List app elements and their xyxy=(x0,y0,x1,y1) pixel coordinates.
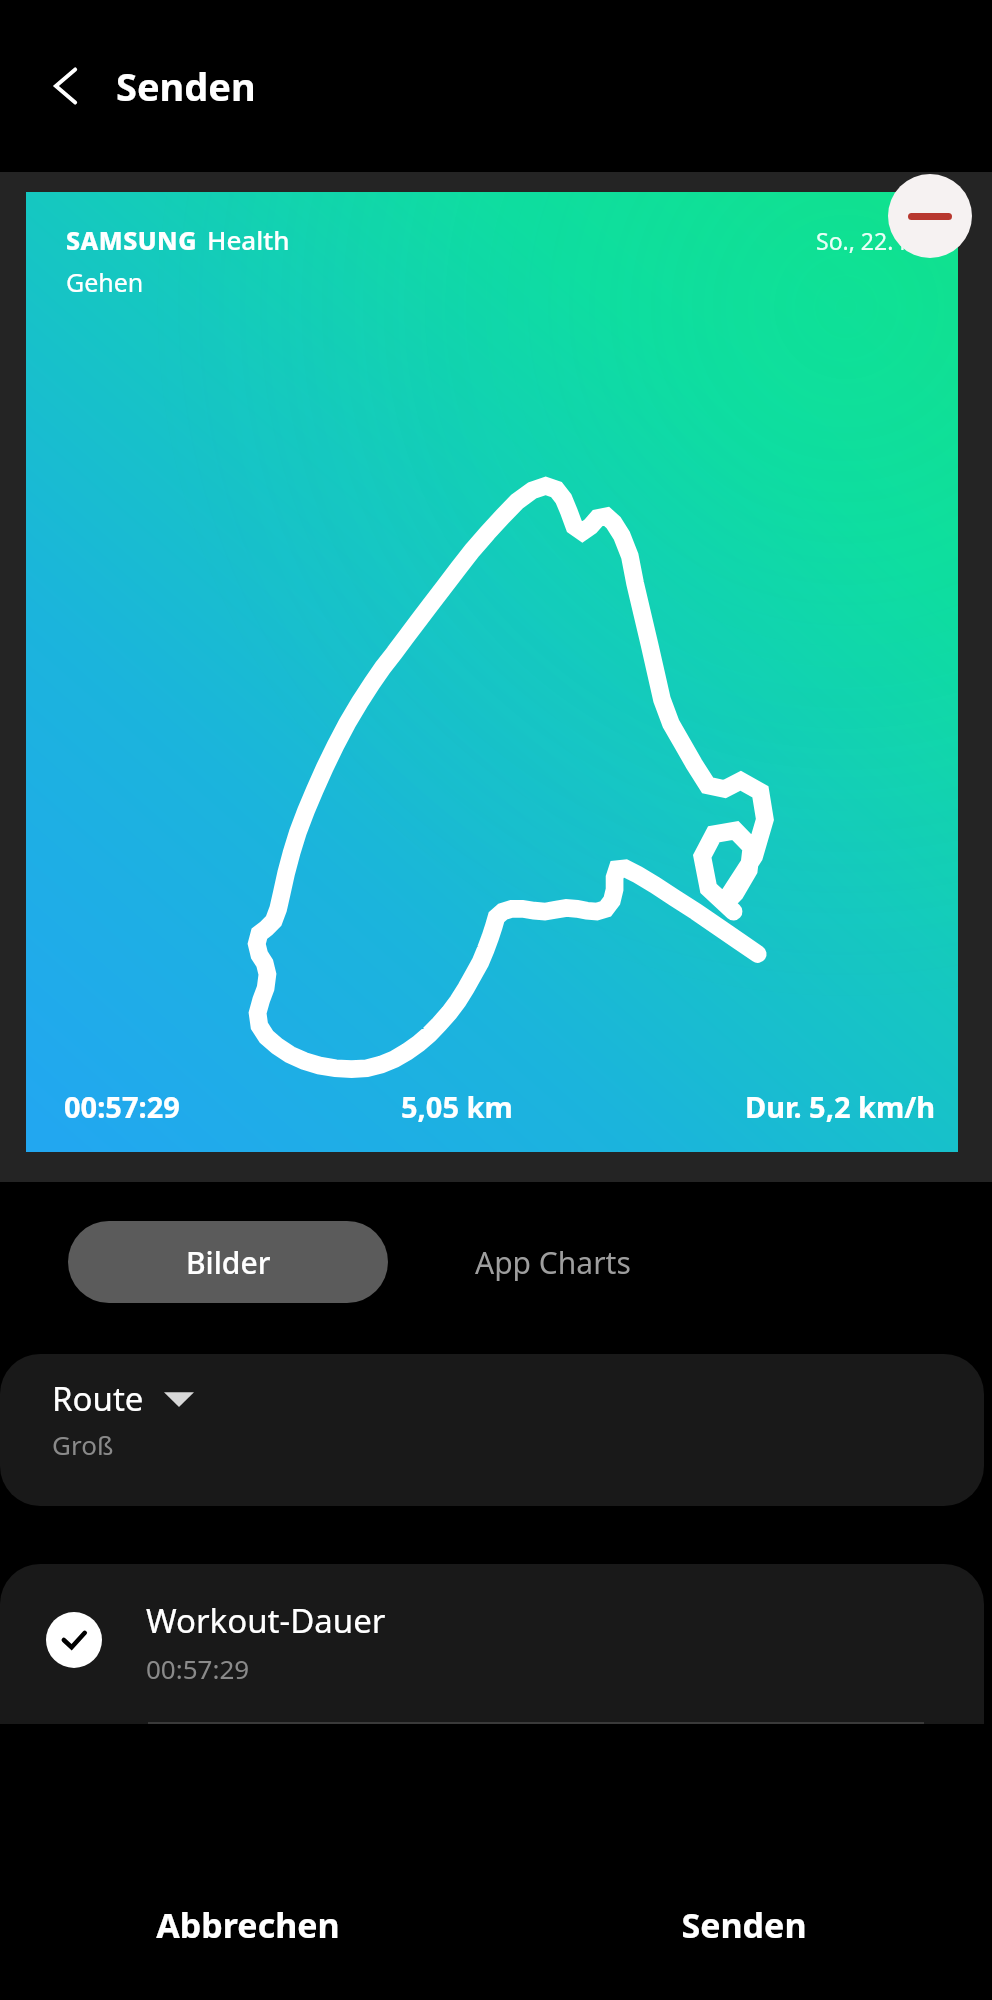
staticText: Senden xyxy=(681,1902,807,1948)
staticText: Groß xyxy=(52,1427,114,1462)
button[interactable]: App Charts xyxy=(388,1221,718,1303)
staticText: Senden xyxy=(116,60,256,112)
staticText: Health xyxy=(207,222,290,257)
staticText: SAMSUNG xyxy=(66,223,197,257)
staticText: Route xyxy=(52,1376,144,1421)
staticText: Workout-Dauer xyxy=(146,1598,386,1643)
button[interactable]: Bilder xyxy=(68,1221,388,1303)
staticText: Dur. 5,2 km/h xyxy=(745,1087,936,1126)
button[interactable]: Entfernen xyxy=(888,174,972,258)
button[interactable]: Workout-Dauer xyxy=(0,1564,984,1724)
staticText: 5,05 km xyxy=(401,1087,513,1126)
staticText: Gehen xyxy=(66,265,144,299)
staticText: 00:57:29 xyxy=(64,1087,180,1126)
button[interactable]: Abbrechen xyxy=(0,1850,496,2000)
button[interactable]: Senden xyxy=(496,1850,992,2000)
button[interactable]: Route xyxy=(0,1354,984,1506)
button[interactable]: SAMSUNG xyxy=(26,192,958,1152)
staticText: Abbrechen xyxy=(156,1902,340,1948)
staticText: 00:57:29 xyxy=(146,1651,250,1686)
button[interactable]: Zurück xyxy=(30,50,102,122)
staticText: App Charts xyxy=(475,1242,631,1283)
staticText: Bilder xyxy=(186,1242,271,1283)
staticText: So., 22. Mai xyxy=(816,225,940,256)
